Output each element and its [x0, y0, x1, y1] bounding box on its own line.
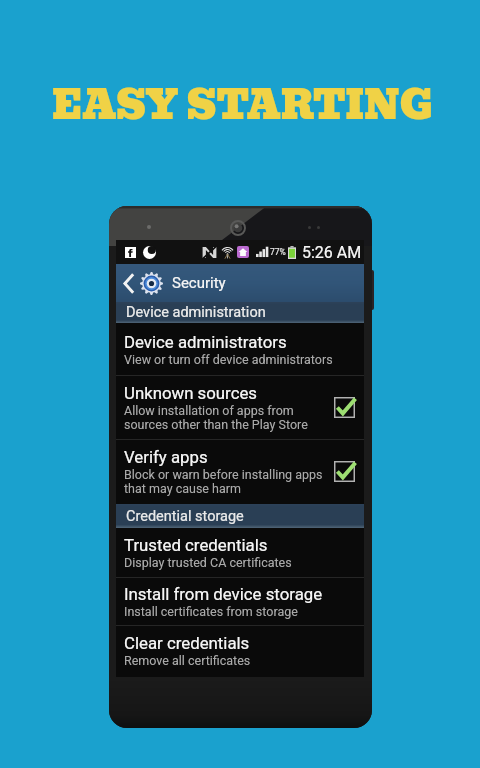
button[interactable]: Trusted credentials	[116, 528, 364, 577]
staticText: Trusted credentials	[124, 535, 268, 555]
button[interactable]: Unknown sources	[116, 376, 364, 439]
staticText: Remove all certificates	[124, 653, 251, 668]
other: Navigate up	[122, 273, 135, 294]
button[interactable]: Install from device storage	[116, 578, 364, 625]
staticText: Clear credentials	[124, 633, 250, 653]
button[interactable]: Navigate up	[116, 264, 364, 302]
staticText: Block or warn before installing apps tha…	[124, 467, 323, 497]
staticText: Device administrators	[124, 332, 287, 352]
staticText: EASY STARTING	[52, 74, 433, 137]
staticText: View or turn off device administrators	[124, 352, 333, 367]
staticText: Device administration	[126, 304, 266, 321]
staticText: 5:26 AM	[302, 243, 362, 262]
button[interactable]: Toggle Unknown sources	[331, 394, 357, 420]
button[interactable]: Toggle Verify apps	[331, 458, 357, 484]
button[interactable]: Device administrators	[116, 323, 364, 375]
staticText: Display trusted CA certificates	[124, 555, 292, 570]
staticText: Unknown sources	[124, 383, 258, 403]
staticText: Install from device storage	[124, 584, 323, 604]
button[interactable]: Clear credentials	[116, 626, 364, 674]
staticText: Allow installation of apps from sources …	[124, 403, 308, 433]
staticText: Install certificates from storage	[124, 604, 298, 619]
staticText: Verify apps	[124, 447, 208, 467]
staticText: Credential storage	[126, 508, 244, 525]
staticText: 77%	[270, 247, 286, 257]
button[interactable]: Verify apps	[116, 440, 364, 504]
staticText: Security	[172, 274, 226, 292]
